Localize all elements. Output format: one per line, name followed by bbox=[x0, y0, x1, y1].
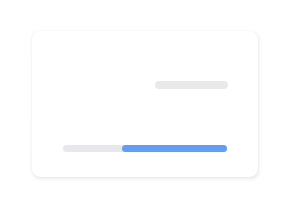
other: Progress bbox=[122, 145, 227, 152]
button[interactable]: Progress bbox=[32, 31, 258, 177]
